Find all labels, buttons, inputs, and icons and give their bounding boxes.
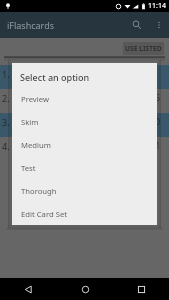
staticText: Preview: [21, 94, 49, 104]
staticText: 30: [151, 116, 161, 127]
button[interactable]: Edit Card Set: [12, 202, 157, 225]
button[interactable]: Skim: [12, 110, 157, 133]
staticText: 1.: [2, 68, 10, 80]
button[interactable]: 2.: [0, 89, 169, 113]
button[interactable]: 4.: [0, 137, 169, 161]
staticText: Thorough: [21, 186, 57, 196]
staticText: USE LISTED: [125, 44, 162, 53]
button[interactable]: Thorough: [12, 179, 157, 202]
staticText: 3.: [2, 116, 10, 128]
staticText: 2.: [2, 92, 10, 104]
button[interactable]: Search: [125, 13, 149, 37]
button[interactable]: 1.: [0, 65, 169, 89]
staticText: 11:14: [148, 1, 166, 11]
staticText: iFlashcards: [7, 19, 54, 31]
staticText: Unit 1 Vocab: [13, 68, 67, 80]
staticText: Unit 4 Vocab: [13, 140, 67, 152]
staticText: Edit Card Set: [21, 209, 68, 219]
staticText: Select an option: [20, 71, 90, 83]
button[interactable]: 3.: [0, 113, 169, 137]
button[interactable]: More options: [149, 15, 169, 35]
button[interactable]: USE LISTED: [123, 42, 164, 55]
button[interactable]: Back: [0, 278, 57, 300]
button[interactable]: Recent apps: [113, 278, 169, 300]
staticText: Unit 3 Vocab: [13, 116, 67, 128]
staticText: Skim: [21, 117, 39, 127]
staticText: 11: [151, 140, 161, 151]
button[interactable]: Medium: [12, 133, 157, 156]
staticText: Medium: [21, 140, 51, 150]
staticText: Unit 2 Vocab: [13, 92, 67, 104]
button[interactable]: Home: [57, 278, 113, 300]
staticText: 25: [151, 92, 161, 103]
button[interactable]: Test: [12, 156, 157, 179]
button[interactable]: Preview: [12, 87, 157, 110]
staticText: 4.: [2, 140, 10, 152]
staticText: Test: [21, 163, 36, 173]
